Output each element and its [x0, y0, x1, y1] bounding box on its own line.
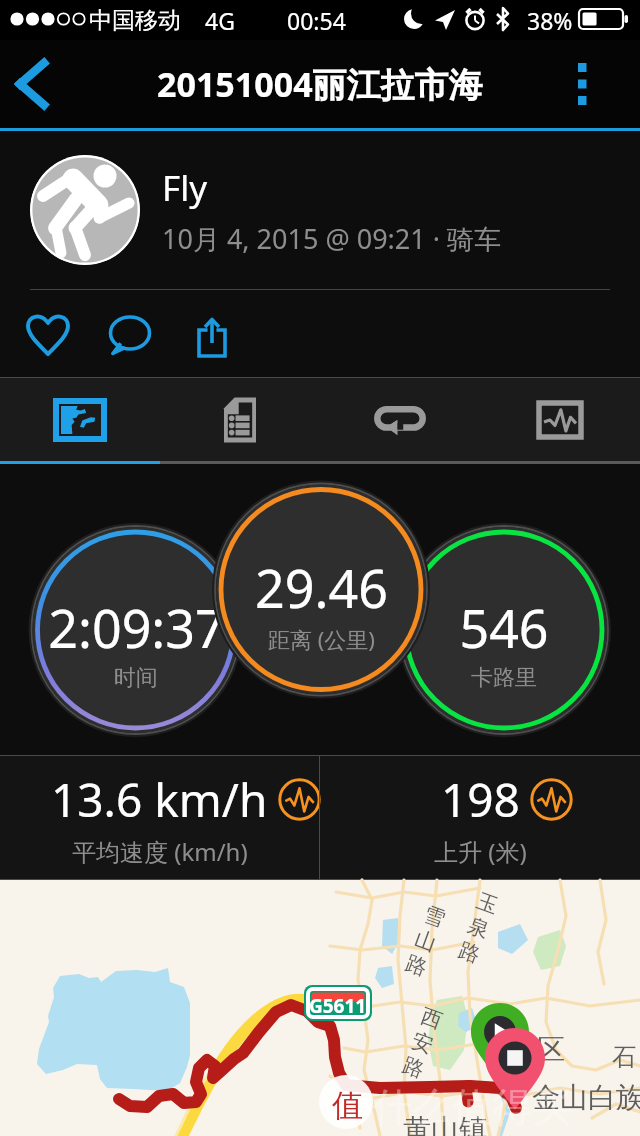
staticText: 卡路里	[471, 664, 537, 692]
button[interactable]: Details	[160, 378, 320, 461]
button[interactable]: Route map	[0, 880, 640, 1136]
staticText: 黄山镇	[403, 1112, 487, 1136]
staticText: G5611	[309, 993, 367, 1019]
staticText: 中国移动	[89, 6, 181, 35]
staticText: 路	[455, 937, 484, 968]
staticText: 10月 4, 2015 @ 09:21 · 骑车	[162, 220, 501, 257]
staticText: 玉	[473, 888, 502, 919]
staticText: 38%	[527, 5, 573, 36]
staticText: 西	[417, 1003, 446, 1034]
button[interactable]: 198	[320, 756, 640, 879]
staticText: 546	[459, 592, 549, 663]
staticText: 198	[441, 768, 520, 831]
staticText: 什么值得买	[372, 1082, 572, 1132]
staticText: 20151004丽江拉市海	[157, 61, 483, 107]
staticText: 泉	[464, 912, 493, 944]
staticText: 石	[612, 1042, 636, 1072]
staticText: 雪	[420, 901, 449, 932]
staticText: 4G	[205, 5, 235, 36]
button[interactable]: Athlete avatar	[30, 155, 140, 265]
staticText: 2:09:37	[48, 592, 225, 663]
button[interactable]: Analysis	[480, 378, 640, 461]
button[interactable]: Like	[18, 304, 78, 364]
staticText: 区	[537, 1032, 565, 1067]
button[interactable]: Comment	[100, 304, 160, 364]
staticText: 山	[411, 925, 440, 957]
button[interactable]: 13.6 km/h	[0, 756, 319, 879]
staticText: Fly	[162, 164, 208, 212]
staticText: 金山白族乡	[532, 1080, 640, 1115]
button[interactable]: Map	[0, 378, 160, 461]
staticText: 值	[332, 1086, 363, 1125]
staticText: 安	[408, 1027, 437, 1059]
staticText: 距离 (公里)	[268, 624, 375, 654]
button[interactable]: Share	[182, 304, 242, 364]
staticText: 路	[402, 950, 431, 981]
button[interactable]: Back	[0, 40, 64, 128]
staticText: 29.46	[255, 552, 388, 623]
staticText: 上升 (米)	[434, 835, 527, 868]
staticText: 00:54	[287, 5, 346, 36]
staticText: 平均速度 (km/h)	[72, 835, 248, 868]
button[interactable]: More options	[532, 40, 640, 128]
staticText: 路	[399, 1052, 428, 1083]
button[interactable]: Splits	[320, 378, 480, 461]
staticText: 时间	[114, 664, 158, 692]
staticText: 13.6 km/h	[51, 768, 268, 831]
